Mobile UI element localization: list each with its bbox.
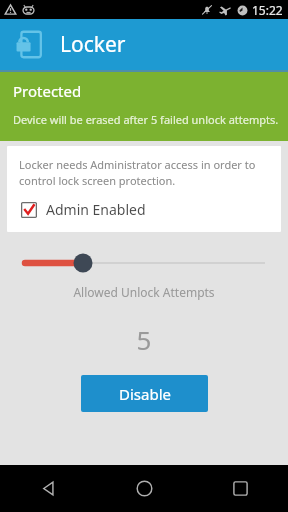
button[interactable]: Disable	[81, 375, 208, 412]
staticText: Device will be erased after 5 failed unl…	[13, 112, 279, 127]
staticText: Protected	[13, 81, 82, 101]
staticText: 5	[0, 322, 288, 357]
staticText: Admin Enabled	[46, 200, 146, 219]
button[interactable]: Admin Enabled	[19, 198, 148, 221]
button[interactable]: Home	[96, 465, 192, 512]
button[interactable]: Back	[0, 465, 96, 512]
button[interactable]: Allowed unlock attempts slider	[0, 250, 288, 276]
staticText: Allowed Unlock Attempts	[0, 284, 288, 300]
staticText: Locker	[60, 30, 126, 59]
staticText: Disable	[119, 384, 171, 404]
staticText: Locker needs Administrator access in ord…	[19, 157, 271, 188]
button[interactable]: Recent apps	[192, 465, 288, 512]
staticText: 15:22	[252, 2, 283, 18]
